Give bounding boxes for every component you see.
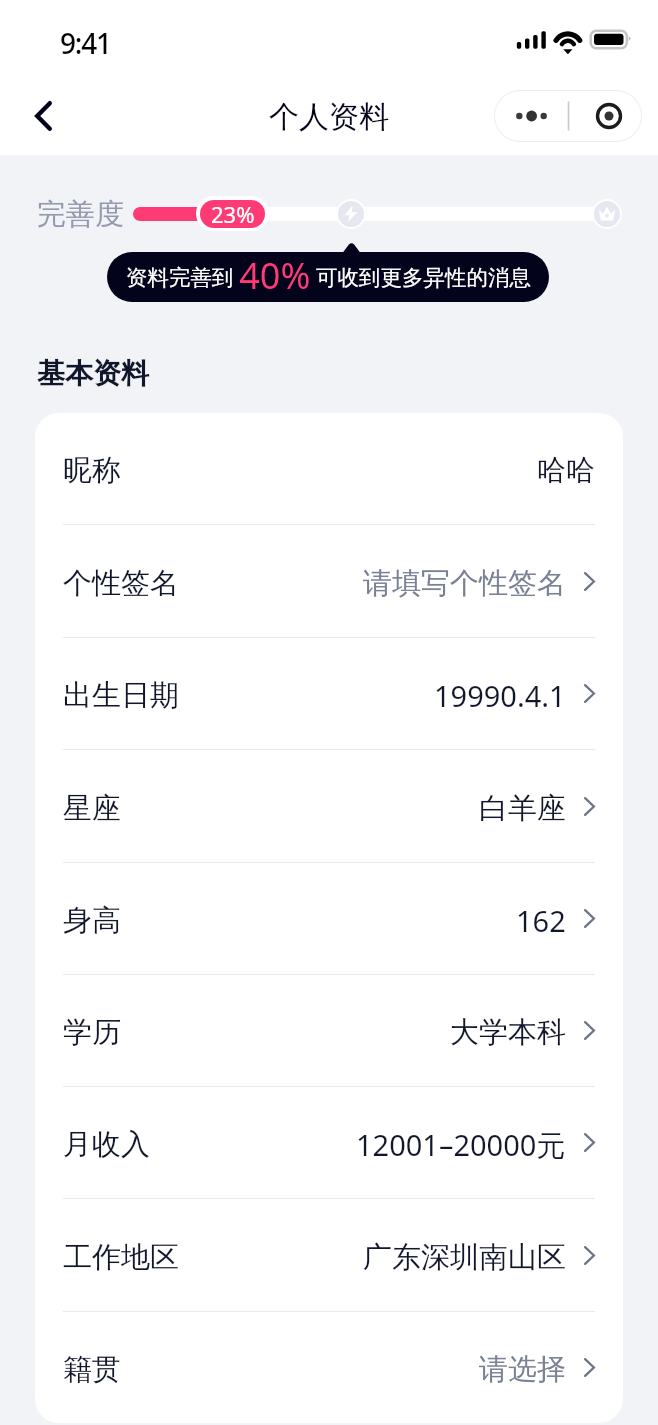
staticText: 完善度 bbox=[37, 196, 124, 233]
button[interactable]: Back bbox=[8, 78, 78, 154]
staticText: 月收入 bbox=[63, 1126, 150, 1163]
button[interactable]: 昵称 bbox=[35, 413, 623, 524]
staticText: 身高 bbox=[63, 902, 121, 939]
staticText: 籍贯 bbox=[63, 1351, 121, 1388]
staticText: 资料完善到 40% 可收到更多异性的消息 bbox=[126, 252, 531, 300]
staticText: 19990.4.1 bbox=[434, 676, 566, 715]
staticText: 大学本科 bbox=[450, 1014, 566, 1051]
staticText: 个人资料 bbox=[269, 98, 389, 136]
staticText: 工作地区 bbox=[63, 1239, 179, 1276]
staticText: 出生日期 bbox=[63, 677, 179, 714]
button[interactable]: 身高 bbox=[35, 863, 623, 974]
button[interactable]: 月收入 bbox=[35, 1087, 623, 1198]
staticText: 学历 bbox=[63, 1014, 121, 1051]
button[interactable]: 星座 bbox=[35, 750, 623, 862]
staticText: 昵称 bbox=[63, 452, 121, 489]
staticText: 9:41 bbox=[60, 24, 111, 62]
button[interactable]: More options bbox=[494, 90, 642, 142]
staticText: 星座 bbox=[63, 790, 121, 827]
button[interactable]: 工作地区 bbox=[35, 1199, 623, 1311]
staticText: 12001–20000元 bbox=[356, 1125, 566, 1165]
staticText: 基本资料 bbox=[37, 356, 149, 391]
staticText: 白羊座 bbox=[479, 790, 566, 827]
staticText: 个性签名 bbox=[63, 565, 179, 602]
staticText: 请填写个性签名 bbox=[363, 565, 566, 602]
staticText: 23% bbox=[211, 200, 255, 227]
staticText: 162 bbox=[516, 901, 566, 940]
button[interactable]: 出生日期 bbox=[35, 638, 623, 749]
button[interactable]: 个性签名 bbox=[35, 525, 623, 637]
button[interactable]: 学历 bbox=[35, 975, 623, 1086]
staticText: 哈哈 bbox=[537, 452, 595, 489]
staticText: 请选择 bbox=[479, 1351, 566, 1388]
staticText: 广东深圳南山区 bbox=[363, 1239, 566, 1276]
button[interactable]: 籍贯 bbox=[35, 1312, 623, 1423]
